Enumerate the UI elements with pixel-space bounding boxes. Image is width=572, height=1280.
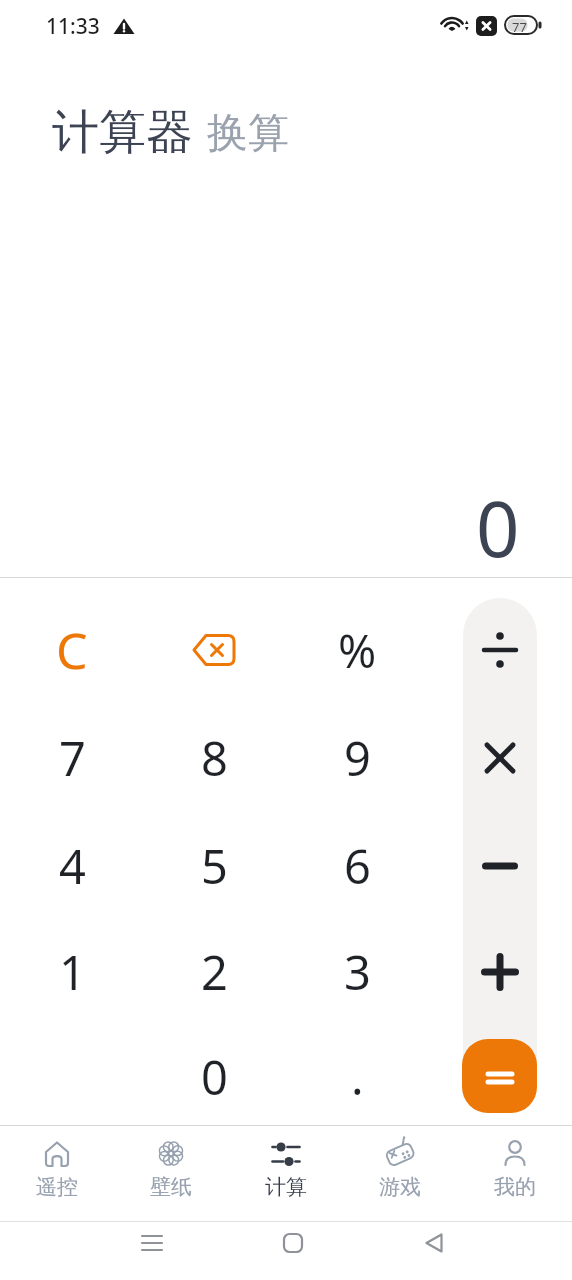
button[interactable]: 0	[162, 1025, 266, 1129]
button[interactable]	[141, 1233, 163, 1253]
staticText: 0	[201, 1045, 228, 1109]
button[interactable]: 7	[20, 706, 124, 810]
button[interactable]	[448, 598, 552, 702]
staticText: 5	[201, 834, 228, 898]
staticText: .	[351, 1045, 364, 1109]
button[interactable]: 游戏	[343, 1138, 457, 1200]
staticText: 11:33	[46, 12, 100, 41]
button[interactable]: 计算	[229, 1138, 343, 1200]
staticText: 6	[344, 834, 371, 898]
button[interactable]: 1	[20, 920, 124, 1024]
button[interactable]	[283, 1233, 303, 1253]
button[interactable]: 9	[305, 706, 409, 810]
button[interactable]: .	[305, 1025, 409, 1129]
button[interactable]	[448, 814, 552, 918]
button[interactable]: 壁纸	[114, 1138, 228, 1200]
staticText: %	[338, 619, 377, 682]
button[interactable]: 6	[305, 814, 409, 918]
staticText: 1	[59, 940, 86, 1004]
button[interactable]	[162, 598, 266, 702]
button[interactable]: 我的	[458, 1138, 572, 1200]
button[interactable]: 2	[162, 920, 266, 1024]
staticText: 游戏	[379, 1174, 421, 1200]
staticText: 3	[344, 940, 371, 1004]
button[interactable]: 8	[162, 706, 266, 810]
staticText: 8	[201, 726, 228, 790]
button[interactable]	[448, 920, 552, 1024]
button[interactable]: %	[305, 598, 409, 702]
button[interactable]: 4	[20, 814, 124, 918]
staticText: 7	[59, 726, 86, 790]
button[interactable]: 5	[162, 814, 266, 918]
button[interactable]	[462, 1039, 537, 1113]
staticText: 计算	[265, 1174, 307, 1200]
staticText: 4	[59, 834, 86, 898]
button[interactable]	[448, 706, 552, 810]
button[interactable]: 3	[305, 920, 409, 1024]
button[interactable]: 换算	[207, 108, 289, 160]
staticText: 我的	[494, 1174, 536, 1200]
staticText: C	[56, 616, 88, 684]
staticText: 2	[201, 940, 228, 1004]
staticText: 0	[476, 476, 520, 580]
button[interactable]: 遥控	[0, 1138, 114, 1200]
staticText: 遥控	[36, 1174, 78, 1200]
staticText: 计算器	[52, 103, 193, 162]
staticText: 9	[344, 726, 371, 790]
staticText: 77	[512, 18, 527, 36]
staticText: 壁纸	[150, 1174, 192, 1200]
button[interactable]	[425, 1233, 443, 1253]
button[interactable]: C	[20, 598, 124, 702]
